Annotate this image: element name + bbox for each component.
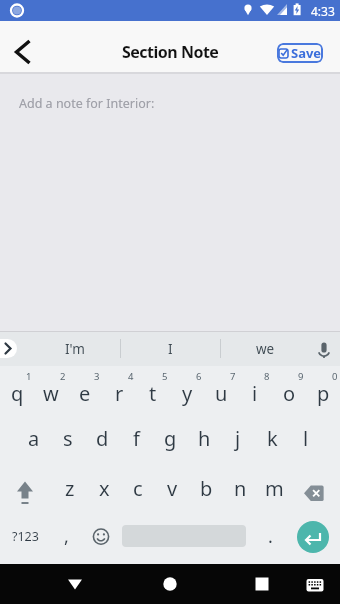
staticText: 1 xyxy=(26,370,32,383)
button[interactable]: we xyxy=(221,331,310,366)
staticText: g xyxy=(164,425,177,452)
button[interactable]: n xyxy=(223,465,257,515)
staticText: I'm xyxy=(65,340,85,358)
staticText: k xyxy=(267,425,278,452)
staticText: o xyxy=(283,380,296,407)
button[interactable]: m xyxy=(257,465,291,515)
button[interactable]: , xyxy=(49,514,83,564)
staticText: 8 xyxy=(264,370,270,383)
button[interactable] xyxy=(150,564,190,604)
staticText: . xyxy=(268,524,273,549)
button[interactable] xyxy=(297,521,329,553)
staticText: j xyxy=(235,425,241,452)
staticText: y xyxy=(182,380,193,407)
button[interactable]: r xyxy=(102,366,136,415)
button[interactable]: Save xyxy=(277,43,323,63)
button[interactable]: j xyxy=(221,415,255,465)
staticText: 4 xyxy=(128,370,134,383)
button[interactable]: t xyxy=(136,366,170,415)
button[interactable]: ?123 xyxy=(4,514,46,564)
staticText: Add a note for Interior: xyxy=(19,95,155,112)
staticText: 2 xyxy=(60,370,66,383)
button[interactable]: o xyxy=(272,366,306,415)
staticText: c xyxy=(133,475,143,502)
button[interactable] xyxy=(298,566,334,602)
button[interactable]: . xyxy=(253,514,287,564)
button[interactable] xyxy=(242,564,282,604)
button[interactable]: p xyxy=(306,366,340,415)
staticText: z xyxy=(65,475,75,502)
staticText: I xyxy=(168,340,173,358)
button[interactable]: f xyxy=(119,415,153,465)
staticText: 4:33 xyxy=(311,3,335,19)
button[interactable] xyxy=(0,339,17,358)
button[interactable]: x xyxy=(87,465,121,515)
staticText: n xyxy=(234,475,247,502)
staticText: q xyxy=(11,380,24,407)
staticText: Section Note xyxy=(122,41,219,63)
button[interactable]: I'm xyxy=(30,331,120,366)
staticText: t xyxy=(149,380,157,407)
staticText: d xyxy=(96,425,109,452)
staticText: w xyxy=(43,380,59,407)
staticText: 7 xyxy=(230,370,236,383)
button[interactable]: e xyxy=(68,366,102,415)
button[interactable]: z xyxy=(53,465,87,515)
staticText: 0 xyxy=(332,370,338,383)
staticText: e xyxy=(79,380,91,407)
button[interactable]: b xyxy=(189,465,223,515)
button[interactable]: i xyxy=(238,366,272,415)
button[interactable]: a xyxy=(17,415,51,465)
button[interactable]: g xyxy=(153,415,187,465)
button[interactable]: l xyxy=(289,415,323,465)
staticText: b xyxy=(200,475,213,502)
button[interactable]: d xyxy=(85,415,119,465)
staticText: u xyxy=(215,380,228,407)
button[interactable]: q xyxy=(0,366,34,415)
staticText: r xyxy=(115,380,124,407)
staticText: 3 xyxy=(94,370,100,383)
staticText: l xyxy=(303,425,309,452)
button[interactable]: h xyxy=(187,415,221,465)
staticText: s xyxy=(63,425,73,452)
staticText: we xyxy=(256,340,275,358)
staticText: 6 xyxy=(196,370,202,383)
button[interactable]: k xyxy=(255,415,289,465)
button[interactable]: Add a note for Interior: xyxy=(0,74,340,331)
button[interactable] xyxy=(84,514,118,564)
staticText: h xyxy=(198,425,211,452)
staticText: f xyxy=(133,425,140,452)
staticText: 9 xyxy=(298,370,304,383)
staticText: Save xyxy=(291,44,322,62)
button[interactable]: I xyxy=(121,331,220,366)
staticText: i xyxy=(252,380,258,407)
button[interactable] xyxy=(296,465,336,515)
button[interactable]: s xyxy=(51,415,85,465)
button[interactable] xyxy=(6,35,40,69)
staticText: , xyxy=(64,524,69,549)
button[interactable]: w xyxy=(34,366,68,415)
button[interactable]: u xyxy=(204,366,238,415)
button[interactable]: y xyxy=(170,366,204,415)
staticText: p xyxy=(317,380,330,407)
button[interactable]: v xyxy=(155,465,189,515)
staticText: m xyxy=(265,475,284,502)
staticText: ?123 xyxy=(12,528,39,545)
button[interactable] xyxy=(5,465,45,515)
staticText: x xyxy=(99,475,110,502)
staticText: v xyxy=(167,475,178,502)
button[interactable]: c xyxy=(121,465,155,515)
staticText: a xyxy=(28,425,40,452)
staticText: 5 xyxy=(162,370,168,383)
button[interactable] xyxy=(310,334,338,366)
button[interactable] xyxy=(55,564,95,604)
